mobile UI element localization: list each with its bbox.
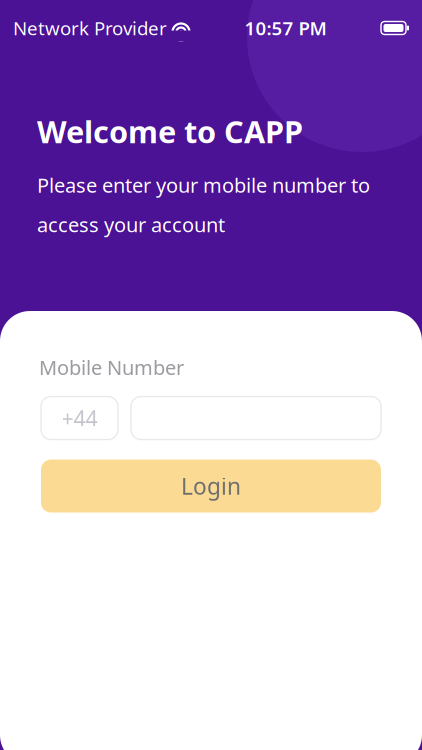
staticText: Network Provider (13, 16, 167, 40)
staticText: access your account (37, 211, 225, 238)
staticText: Login (181, 471, 241, 501)
staticText: Welcome to CAPP (37, 111, 303, 152)
button[interactable]: Login (41, 460, 381, 513)
staticText: Mobile Number (39, 354, 184, 381)
staticText: Please enter your mobile number to (37, 172, 370, 198)
button[interactable]: +44 (41, 397, 118, 440)
button[interactable] (131, 397, 381, 440)
staticText: 10:57 PM (244, 16, 326, 40)
staticText: +44 (61, 404, 97, 432)
